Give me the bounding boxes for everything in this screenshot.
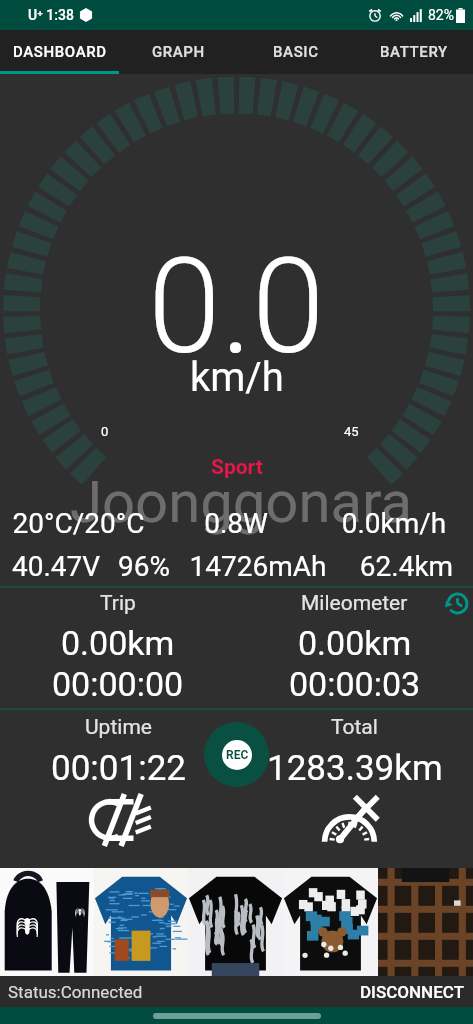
button[interactable]: Reset trip history [441,589,469,617]
button[interactable]: BATTERY [355,30,473,74]
staticText: Uptime [85,715,152,740]
staticText: BATTERY [380,43,448,61]
staticText: 96% [112,550,176,583]
button[interactable]: BASIC [237,30,355,74]
button[interactable] [188,868,283,976]
button[interactable]: DASHBOARD [0,30,119,74]
button[interactable] [283,868,378,976]
button[interactable] [94,868,188,976]
staticText: 40.47V [0,550,112,583]
staticText: 14726mAh [176,550,340,583]
staticText: DASHBOARD [13,43,107,61]
staticText: 0 [101,424,109,439]
staticText: REC [226,748,249,762]
button[interactable]: Cruise control off [316,791,392,845]
button[interactable]: GRAPH [119,30,237,74]
staticText: 20°C/20°C [0,507,157,540]
staticText: Trip [100,591,136,616]
button[interactable] [378,868,473,976]
staticText: 45 [344,424,359,439]
staticText: GRAPH [152,43,205,61]
staticText: DISCONNECT [360,982,464,1002]
staticText: 00:00:00 [52,664,184,704]
staticText: Total [331,715,378,740]
staticText: Mileometer [301,591,408,616]
staticText: 0.0 [148,230,325,384]
staticText: Sport [211,455,263,480]
staticText: Status:Connected [8,982,143,1002]
button[interactable]: Record [204,722,269,787]
staticText: 00:01:22 [51,748,186,789]
staticText: 0.8W [157,507,315,540]
staticText: 0.00km [61,623,175,663]
button[interactable]: Headlight off [90,796,150,844]
staticText: 82% [428,7,454,23]
staticText: Joonggonara [70,468,413,536]
staticText: BASIC [273,43,319,61]
staticText: 0.0km/h [315,507,473,540]
staticText: U⁺ 1:38 [28,7,74,23]
staticText: 0.00km [298,623,412,663]
button[interactable] [0,868,94,976]
staticText: 00:00:03 [289,664,421,704]
staticText: 62.4km [340,550,473,583]
button[interactable]: DISCONNECT [351,976,473,1007]
staticText: km/h [190,354,284,401]
staticText: 1283.39km [267,748,443,789]
